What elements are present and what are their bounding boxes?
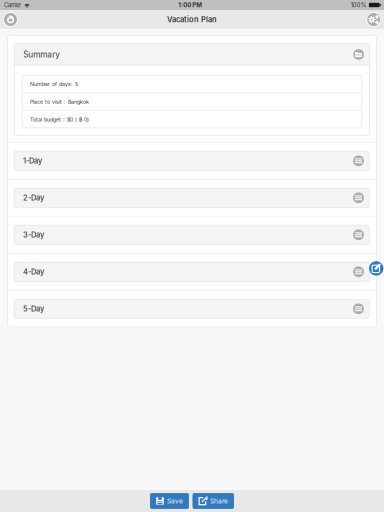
staticText: Total budget : $0 ( ฿ 0) xyxy=(30,116,89,123)
button[interactable]: Edit day xyxy=(369,261,383,276)
staticText: 1-Day xyxy=(23,156,42,165)
staticText: 1:00 PM xyxy=(178,1,202,9)
staticText: Save xyxy=(167,497,183,505)
button[interactable]: 5-Day xyxy=(7,291,376,327)
button[interactable]: Back xyxy=(0,9,20,29)
staticText: 4-Day xyxy=(23,267,44,276)
staticText: 2-Day xyxy=(23,193,44,202)
staticText: Number of days: 5 xyxy=(30,81,78,87)
staticText: Vacation Plan xyxy=(167,15,217,24)
staticText: Share xyxy=(210,497,228,505)
button[interactable]: Save xyxy=(150,493,189,509)
button[interactable]: 3-Day xyxy=(7,217,376,253)
staticText: Place to visit : Bangkok xyxy=(30,98,89,105)
button[interactable]: 2-Day xyxy=(7,180,376,216)
staticText: Carrier xyxy=(4,1,21,9)
staticText: 5-Day xyxy=(23,304,44,313)
button[interactable]: Share xyxy=(193,493,234,509)
staticText: 3-Day xyxy=(23,230,44,239)
staticText: 100% xyxy=(351,1,367,9)
button[interactable]: 4-Day xyxy=(7,254,376,290)
staticText: Summary xyxy=(23,49,60,59)
button[interactable]: Settings xyxy=(364,10,383,29)
button[interactable]: 1-Day xyxy=(7,143,376,179)
